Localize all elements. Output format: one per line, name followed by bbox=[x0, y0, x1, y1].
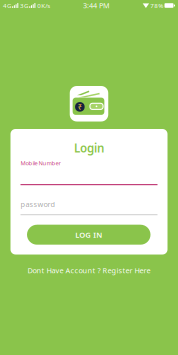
staticText: ₹ bbox=[78, 102, 82, 112]
staticText: 78% bbox=[150, 1, 163, 10]
staticText: 4G bbox=[3, 1, 11, 10]
staticText: LOG IN bbox=[75, 229, 102, 240]
staticText: 0K/s bbox=[37, 1, 50, 10]
button[interactable]: LOG IN bbox=[27, 225, 150, 245]
staticText: password bbox=[20, 199, 55, 209]
button[interactable]: Dont Have Account ? Register Here bbox=[27, 254, 150, 275]
staticText: Login bbox=[74, 140, 104, 156]
staticText: Dont Have Account ? Register Here bbox=[27, 265, 150, 275]
staticText: 3G bbox=[20, 1, 28, 10]
staticText: 3:44 PM bbox=[83, 1, 110, 10]
staticText: Mobile Number bbox=[20, 159, 60, 167]
